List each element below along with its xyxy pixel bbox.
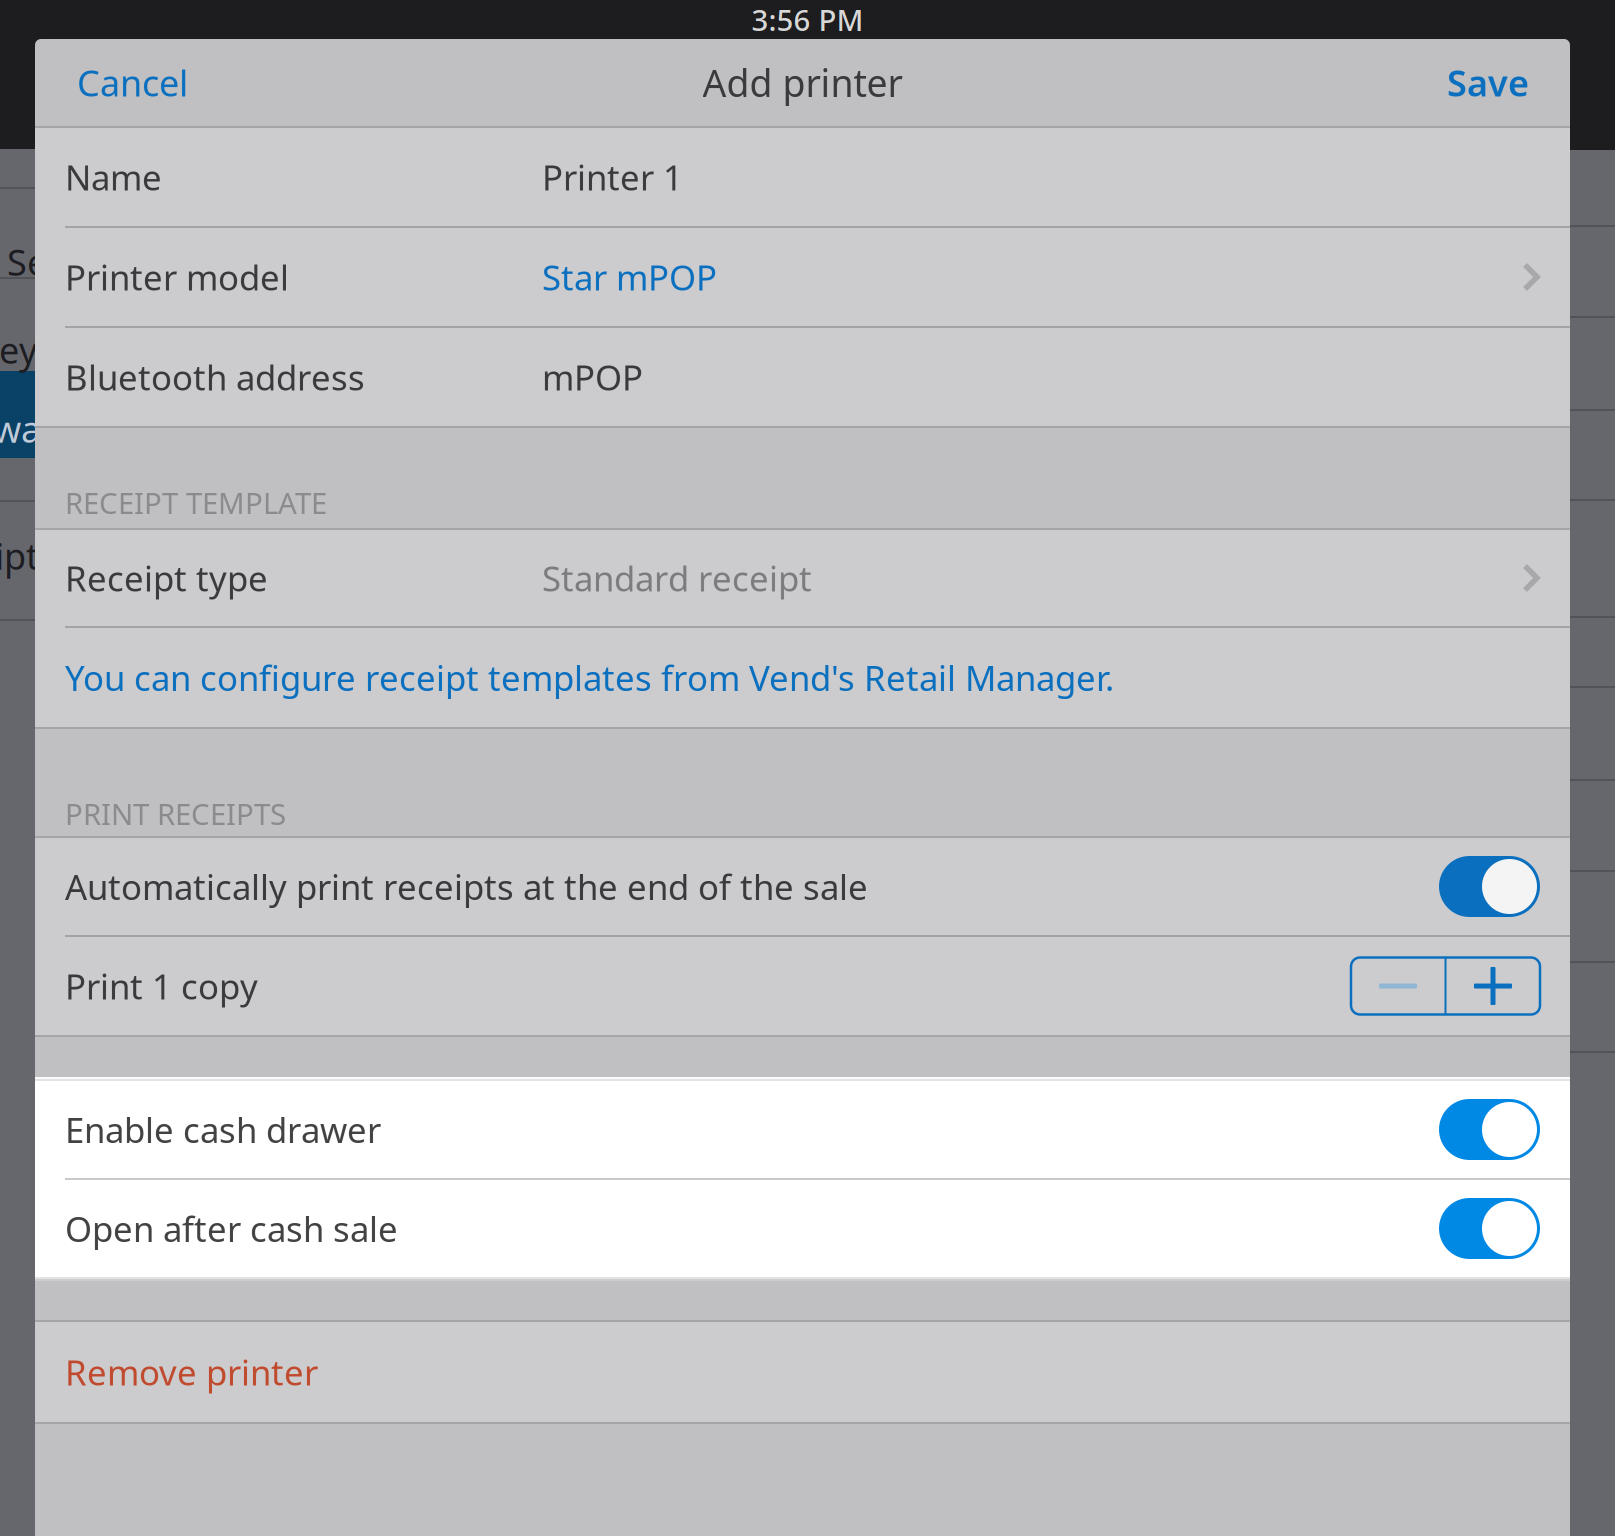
staticText: Star mPOP <box>542 254 717 300</box>
staticText: Hardware <box>0 405 75 453</box>
staticText: Add printer <box>702 58 902 107</box>
button[interactable]: Bluetooth address <box>35 328 1570 426</box>
staticText: Save <box>1447 59 1529 106</box>
staticText: Bluetooth address <box>65 354 365 400</box>
button[interactable]: Increase copies <box>1446 957 1539 1014</box>
staticText: Name <box>65 154 162 200</box>
button[interactable]: Remove printer <box>35 1322 1570 1422</box>
staticText: Printer model <box>65 254 289 300</box>
button[interactable]: Receipt type <box>35 530 1570 626</box>
staticText: Open after cash sale <box>65 1205 398 1251</box>
staticText: Setup <box>7 238 104 286</box>
staticText: Printer 1 <box>542 154 683 200</box>
button[interactable]: Automatically print receipts at the end … <box>35 838 1570 935</box>
button[interactable]: Print 1 copy <box>35 937 1570 1035</box>
staticText: Key settings <box>0 326 179 374</box>
button[interactable]: You can configure receipt templates from… <box>35 628 1570 727</box>
staticText: 3:56 PM <box>751 0 863 39</box>
button[interactable]: Enable cash drawer <box>35 1081 1570 1178</box>
staticText: Standard receipt <box>542 555 812 601</box>
button[interactable]: Name <box>35 128 1570 226</box>
button[interactable]: Save <box>1423 39 1570 126</box>
staticText: Print 1 copy <box>65 963 258 1009</box>
staticText: Receipt type <box>65 555 268 601</box>
staticText: You can configure receipt templates from… <box>65 654 1114 700</box>
button[interactable]: Cancel <box>35 39 212 126</box>
button[interactable]: Decrease copies <box>1351 957 1444 1014</box>
staticText: PRINT RECEIPTS <box>65 794 286 833</box>
staticText: Enable cash drawer <box>65 1106 381 1152</box>
button[interactable]: Open after cash sale <box>35 1180 1570 1277</box>
staticText: Remove printer <box>65 1349 318 1395</box>
staticText: mPOP <box>542 354 643 400</box>
button[interactable]: Printer model <box>35 228 1570 326</box>
staticText: Automatically print receipts at the end … <box>65 863 868 909</box>
staticText: Receipts <box>0 532 56 580</box>
staticText: RECEIPT TEMPLATE <box>65 483 327 522</box>
staticText: Cancel <box>77 59 188 106</box>
